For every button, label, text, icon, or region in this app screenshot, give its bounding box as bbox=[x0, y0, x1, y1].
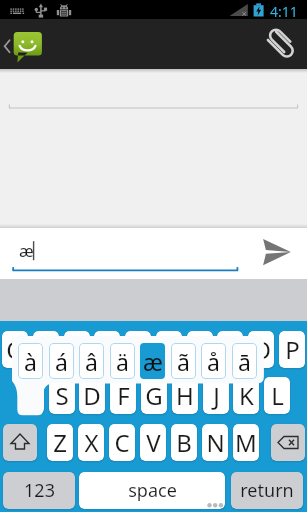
button[interactable]: F bbox=[110, 377, 136, 414]
button[interactable]: Backspace bbox=[271, 424, 305, 461]
staticText: M bbox=[235, 426, 257, 459]
staticText: E bbox=[70, 333, 84, 366]
button[interactable]: æ bbox=[8, 232, 242, 276]
button[interactable]: M bbox=[233, 424, 259, 461]
staticText: 4:11 bbox=[270, 2, 298, 21]
button[interactable]: S bbox=[49, 377, 75, 414]
staticText: F bbox=[117, 379, 130, 412]
button[interactable]: æ bbox=[140, 343, 165, 379]
staticText: W bbox=[35, 333, 58, 366]
button[interactable]: Z bbox=[47, 424, 73, 461]
staticText: ã bbox=[177, 346, 190, 377]
staticText: X bbox=[84, 426, 99, 459]
staticText: H bbox=[176, 379, 194, 412]
staticText: J bbox=[213, 379, 220, 412]
button[interactable]: W bbox=[33, 331, 59, 368]
staticText: T bbox=[131, 333, 145, 366]
button[interactable]: I bbox=[217, 331, 243, 368]
staticText: return bbox=[240, 478, 294, 503]
button[interactable]: R bbox=[94, 331, 120, 368]
button[interactable]: ä bbox=[110, 343, 135, 379]
button[interactable]: space bbox=[79, 472, 225, 509]
staticText: Y bbox=[162, 333, 176, 366]
staticText: á bbox=[55, 346, 68, 377]
staticText: U bbox=[191, 333, 209, 366]
staticText: â bbox=[85, 346, 98, 377]
staticText: D bbox=[83, 379, 101, 412]
button[interactable]: Shift bbox=[3, 424, 37, 461]
staticText: L bbox=[271, 379, 284, 412]
button[interactable]: T bbox=[125, 331, 151, 368]
staticText: æ bbox=[143, 346, 163, 377]
button[interactable]: U bbox=[187, 331, 213, 368]
button[interactable]: O bbox=[248, 331, 274, 368]
button[interactable]: å bbox=[201, 343, 226, 379]
staticText: V bbox=[146, 426, 161, 459]
button[interactable]: X bbox=[78, 424, 104, 461]
button[interactable]: V bbox=[140, 424, 166, 461]
button[interactable]: E bbox=[64, 331, 90, 368]
button[interactable]: G bbox=[141, 377, 167, 414]
button[interactable]: à bbox=[18, 343, 43, 379]
button[interactable]: A bbox=[18, 377, 44, 414]
staticText: Q bbox=[6, 333, 25, 366]
staticText: I bbox=[226, 333, 235, 366]
button[interactable]: Q bbox=[2, 331, 28, 368]
button[interactable]: P bbox=[279, 331, 305, 368]
staticText: O bbox=[252, 333, 271, 366]
staticText: æ bbox=[19, 239, 34, 262]
staticText: ā bbox=[238, 346, 251, 377]
staticText: C bbox=[114, 426, 130, 459]
button[interactable]: Attach bbox=[255, 19, 307, 69]
button[interactable]: L bbox=[264, 377, 290, 414]
staticText: S bbox=[55, 379, 69, 412]
staticText: R bbox=[100, 333, 115, 366]
button[interactable]: K bbox=[233, 377, 259, 414]
button[interactable]: Send bbox=[248, 228, 307, 279]
staticText: G bbox=[145, 379, 163, 412]
button[interactable]: ā bbox=[232, 343, 257, 379]
staticText: à bbox=[24, 346, 37, 377]
button[interactable]: return bbox=[231, 472, 303, 509]
button[interactable]: J bbox=[203, 377, 229, 414]
button[interactable]: á bbox=[49, 343, 74, 379]
button[interactable]: â bbox=[79, 343, 104, 379]
button[interactable]: N bbox=[202, 424, 228, 461]
button[interactable]: ã bbox=[171, 343, 196, 379]
button[interactable]: Navigate up bbox=[0, 19, 56, 69]
staticText: K bbox=[239, 379, 254, 412]
staticText: Z bbox=[53, 426, 67, 459]
button[interactable]: 123 bbox=[3, 472, 75, 509]
button[interactable]: B bbox=[171, 424, 197, 461]
button[interactable]: C bbox=[109, 424, 135, 461]
staticText: B bbox=[176, 426, 192, 459]
button[interactable]: D bbox=[79, 377, 105, 414]
staticText: N bbox=[206, 426, 225, 459]
staticText: 123 bbox=[24, 478, 55, 503]
button[interactable]: Y bbox=[156, 331, 182, 368]
staticText: ä bbox=[116, 346, 129, 377]
staticText: P bbox=[285, 333, 300, 366]
button[interactable]: H bbox=[172, 377, 198, 414]
staticText: space bbox=[128, 478, 177, 503]
staticText: å bbox=[207, 346, 220, 377]
